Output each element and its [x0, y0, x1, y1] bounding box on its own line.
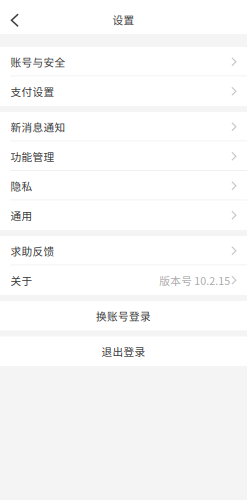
- staticText: 账号与安全: [10, 54, 65, 69]
- staticText: 设置: [112, 12, 134, 27]
- staticText: 新消息通知: [10, 119, 65, 134]
- button[interactable]: 新消息通知: [0, 112, 247, 141]
- button[interactable]: 支付设置: [0, 76, 247, 106]
- staticText: 换账号登录: [96, 308, 151, 323]
- staticText: 退出登录: [101, 343, 145, 359]
- button[interactable]: 功能管理: [0, 141, 247, 171]
- button[interactable]: 账号与安全: [0, 47, 247, 76]
- button[interactable]: 退出登录: [0, 336, 247, 366]
- staticText: 隐私: [10, 178, 32, 193]
- staticText: 功能管理: [10, 148, 54, 164]
- button[interactable]: 通用: [0, 200, 247, 230]
- staticText: 支付设置: [10, 83, 54, 99]
- staticText: 通用: [10, 207, 32, 223]
- button[interactable]: 求助反馈: [0, 236, 247, 265]
- button[interactable]: 换账号登录: [0, 301, 247, 330]
- staticText: 版本号 10.2.15: [159, 272, 230, 288]
- staticText: 关于: [10, 272, 32, 288]
- button[interactable]: Back: [0, 2, 29, 32]
- staticText: 求助反馈: [10, 243, 54, 258]
- button[interactable]: 隐私: [0, 171, 247, 200]
- button[interactable]: 关于: [0, 265, 247, 295]
